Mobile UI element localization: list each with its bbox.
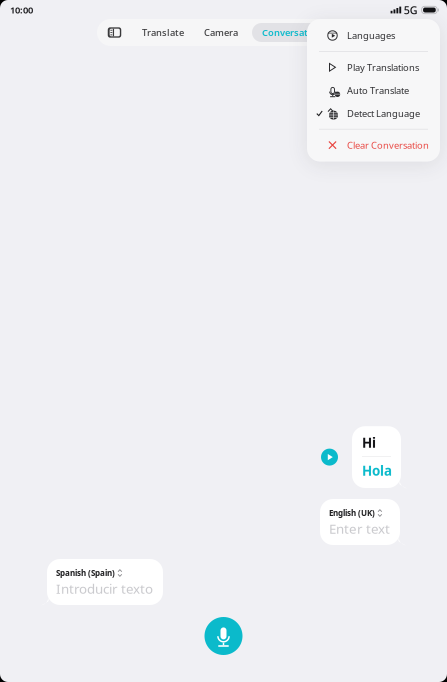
button[interactable]: Auto Translate <box>307 79 440 102</box>
staticText: Languages <box>347 29 395 42</box>
staticText: Hi <box>362 434 376 451</box>
staticText: Introducir texto <box>56 580 153 597</box>
button[interactable]: Translate <box>132 19 194 46</box>
staticText: 5G <box>404 3 418 17</box>
button[interactable]: Show Sidebar <box>97 19 132 46</box>
staticText: English (UK) <box>329 508 375 518</box>
button[interactable]: Play Translations <box>307 56 440 79</box>
button[interactable]: Record <box>204 617 242 655</box>
staticText: 10:00 <box>10 4 33 16</box>
staticText: Detect Language <box>347 107 420 119</box>
staticText: Auto Translate <box>347 84 409 96</box>
staticText: Spanish (Spain) <box>56 568 115 578</box>
staticText: Play Translations <box>347 61 419 73</box>
button[interactable]: Camera <box>194 19 248 46</box>
staticText: Translate <box>142 26 184 39</box>
button[interactable]: Clear Conversation <box>307 134 440 157</box>
staticText: Clear Conversation <box>347 139 429 151</box>
staticText: Enter text <box>329 520 390 537</box>
button[interactable]: Languages <box>307 24 440 47</box>
button[interactable]: Play translation <box>321 449 338 466</box>
staticText: Conversation <box>262 26 323 39</box>
staticText: Camera <box>204 26 238 39</box>
staticText: Hola <box>362 462 392 479</box>
button[interactable]: Detect Language <box>307 102 440 125</box>
button[interactable]: Conversation <box>248 23 341 42</box>
